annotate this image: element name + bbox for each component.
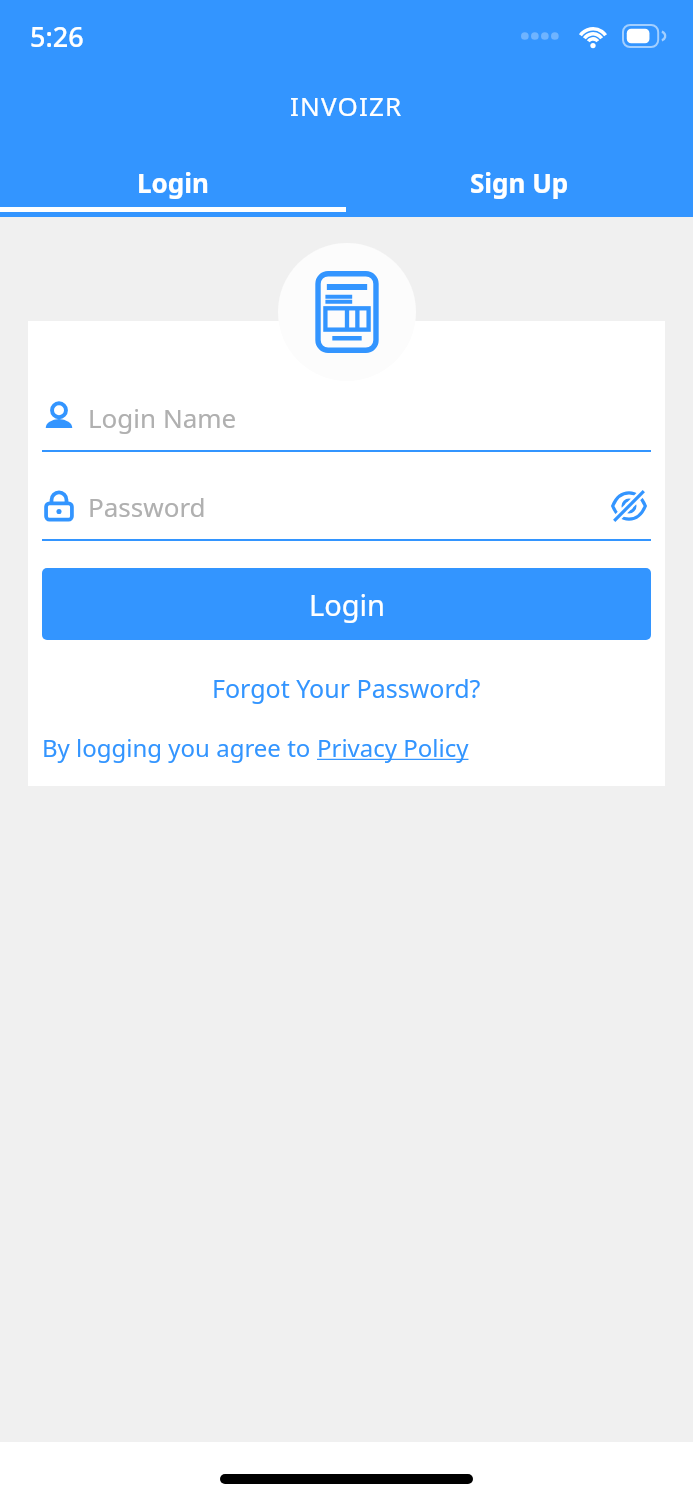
button[interactable]: Forgot Your Password? (42, 663, 651, 713)
staticText: 5:26 (30, 18, 84, 55)
button[interactable]: User (42, 391, 651, 452)
staticText: Privacy Policy (317, 731, 469, 764)
button[interactable]: Sign Up (346, 152, 693, 212)
button[interactable]: Show password (607, 484, 651, 528)
other: Password (42, 489, 76, 523)
staticText: INVOIZR (290, 88, 403, 123)
button[interactable]: Password (42, 480, 651, 541)
staticText: Forgot Your Password? (212, 671, 481, 705)
other: User (42, 400, 76, 434)
button[interactable]: Privacy Policy (317, 731, 469, 764)
staticText: Sign Up (470, 165, 569, 200)
staticText: Login (309, 585, 385, 624)
staticText: Password (88, 489, 206, 524)
staticText: Login Name (88, 400, 237, 435)
staticText: By logging you agree to (42, 731, 317, 764)
button[interactable]: Login (42, 568, 651, 640)
button[interactable]: Login (0, 152, 346, 212)
staticText: Login (137, 165, 209, 200)
